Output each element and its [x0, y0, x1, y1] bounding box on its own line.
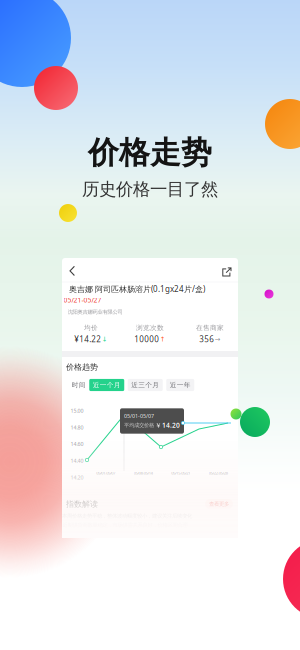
- staticText: ￥14.20: [155, 421, 180, 430]
- button[interactable]: Share: [218, 263, 236, 281]
- staticText: 05/21-05/27: [63, 296, 101, 304]
- staticText: 14.20: [70, 474, 83, 481]
- staticText: ↑: [160, 335, 166, 343]
- staticText: 356: [199, 334, 214, 344]
- staticText: 05/01-05/07: [124, 412, 154, 419]
- staticText: 近一年: [170, 381, 191, 389]
- staticText: 浏览次数: [136, 324, 164, 332]
- staticText: 平均成交价格: [124, 422, 154, 429]
- button[interactable]: 查看更多: [205, 499, 233, 509]
- staticText: 10000: [134, 334, 159, 344]
- staticText: 奥吉娜 阿司匹林肠溶片(0.1gx24片/盒): [69, 284, 205, 294]
- button[interactable]: 近一个月: [89, 379, 124, 391]
- staticText: 均价: [84, 324, 98, 332]
- staticText: 价格走势: [88, 134, 212, 172]
- staticText: →: [215, 335, 221, 343]
- staticText: 价格趋势: [66, 362, 98, 372]
- staticText: 05/22-05/28: [209, 470, 228, 476]
- button[interactable]: 近三个月: [128, 379, 163, 391]
- staticText: 05/01-05/07: [96, 470, 115, 476]
- button[interactable]: 近一年: [166, 379, 194, 391]
- staticText: 近一个月: [93, 381, 121, 389]
- staticText: 在售商家: [196, 324, 224, 332]
- staticText: 15.00: [70, 407, 83, 414]
- staticText: 05/15-05/21: [171, 470, 190, 476]
- button[interactable]: Back: [65, 261, 80, 280]
- staticText: 沈阳奥吉娜药业有限公司: [67, 309, 122, 315]
- staticText: 14.40: [70, 457, 83, 464]
- staticText: ↓: [102, 335, 108, 343]
- staticText: 05/08-05/14: [134, 470, 153, 476]
- staticText: 14.60: [70, 440, 83, 448]
- staticText: 查看更多: [209, 501, 229, 507]
- staticText: 14.80: [70, 424, 83, 431]
- staticText: 指数解读: [66, 499, 98, 509]
- staticText: 时间: [72, 381, 86, 389]
- staticText: 近三个月: [131, 381, 159, 389]
- staticText: 历史价格一目了然: [82, 179, 218, 200]
- staticText: ¥14.22: [74, 334, 101, 344]
